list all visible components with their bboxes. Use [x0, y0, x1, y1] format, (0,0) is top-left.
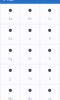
staticText: Bb — [28, 17, 32, 21]
staticText: < — [2, 0, 5, 3]
staticText: Nn — [28, 97, 32, 100]
staticText: Kk — [28, 77, 31, 81]
staticText: Jj — [9, 77, 11, 81]
staticText: Oo — [48, 97, 52, 100]
staticText: Title — [6, 0, 13, 2]
button[interactable]: Bb — [21, 5, 39, 24]
staticText: Gg — [8, 57, 12, 61]
button[interactable]: Hh — [21, 45, 39, 64]
button[interactable]: Gg — [1, 45, 20, 64]
button[interactable]: Nn — [21, 85, 39, 100]
staticText: Cc — [48, 17, 51, 21]
button[interactable]: Dd — [1, 25, 20, 44]
staticText: Aa — [9, 17, 12, 21]
staticText: Hh — [28, 57, 32, 61]
button[interactable]: Ll — [40, 65, 59, 84]
button[interactable]: Ii — [40, 45, 59, 64]
button[interactable]: Aa — [1, 5, 20, 24]
button[interactable]: Mm — [1, 85, 20, 100]
staticText: Ll — [49, 77, 51, 81]
button[interactable]: Cc — [40, 5, 59, 24]
button[interactable]: Jj — [1, 65, 20, 84]
staticText: Ii — [49, 57, 51, 61]
staticText: Ee — [28, 37, 31, 41]
staticText: Mm — [8, 97, 12, 100]
button[interactable]: Kk — [21, 65, 39, 84]
staticText: Ff — [49, 37, 51, 41]
staticText: Dd — [8, 37, 12, 41]
button[interactable]: Oo — [40, 85, 59, 100]
button[interactable]: Back — [2, 0, 5, 3]
button[interactable]: Ee — [21, 25, 39, 44]
button[interactable]: Ff — [40, 25, 59, 44]
